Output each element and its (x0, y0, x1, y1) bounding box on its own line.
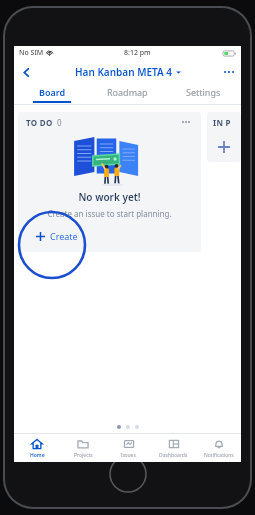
staticText: No SIM (19, 48, 44, 58)
staticText: Roadmap (107, 86, 148, 98)
staticText: Projects (74, 452, 93, 459)
button[interactable]: Add issue (207, 132, 241, 162)
staticText: Board (39, 86, 66, 98)
staticText: 0 (57, 117, 62, 128)
button[interactable]: More options (217, 60, 241, 84)
staticText: Han Kanban META 4 (75, 65, 173, 79)
staticText: Settings (186, 86, 221, 98)
button[interactable]: Create (18, 226, 201, 246)
staticText: Create an issue to start planning. (18, 208, 201, 219)
button[interactable]: Home (14, 434, 60, 462)
button[interactable]: Settings (165, 84, 241, 104)
staticText: 8:12 pm (124, 48, 151, 58)
button[interactable]: Column actions (179, 115, 193, 129)
button[interactable]: Roadmap (89, 84, 165, 104)
button[interactable]: Board (14, 84, 89, 104)
staticText: Home (30, 452, 45, 459)
button[interactable]: Issues (106, 434, 151, 462)
staticText: Dashboards (159, 452, 188, 459)
other: Add issue (218, 141, 230, 153)
staticText: No work yet! (18, 190, 201, 204)
staticText: Create (50, 230, 78, 242)
button[interactable]: Back (14, 60, 38, 84)
staticText: Notifications (204, 452, 234, 459)
button[interactable]: Han Kanban META 4 (75, 65, 181, 79)
button[interactable]: Projects (60, 434, 106, 462)
staticText: Issues (121, 452, 136, 459)
button[interactable]: Dashboards (151, 434, 196, 462)
staticText: TO DO (26, 117, 53, 128)
staticText: IN P (213, 117, 231, 128)
button[interactable]: Notifications (196, 434, 241, 462)
